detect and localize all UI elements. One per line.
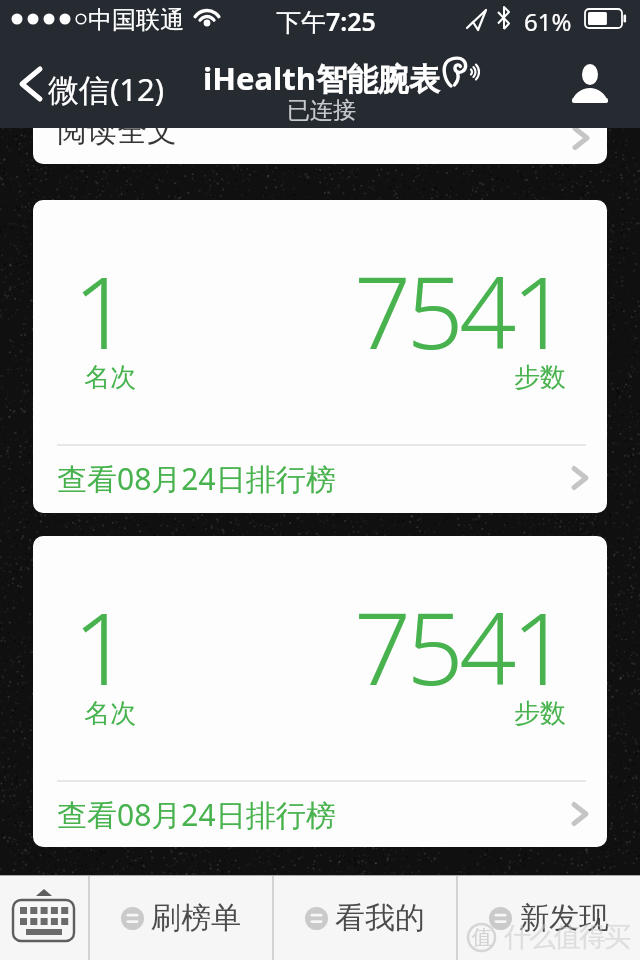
staticText: 1 xyxy=(73,578,131,714)
button[interactable] xyxy=(560,60,620,120)
staticText: 已连接 xyxy=(287,96,356,125)
button[interactable]: 阅读全文 xyxy=(33,128,607,164)
staticText: 61% xyxy=(524,5,572,38)
staticText: 刷榜单 xyxy=(151,899,241,937)
staticText: 名次 xyxy=(84,361,136,394)
staticText: 步数 xyxy=(514,697,566,730)
staticText: 名次 xyxy=(84,697,136,730)
button[interactable]: 查看08月24日排行榜 xyxy=(33,782,607,846)
staticText: 查看08月24日排行榜 xyxy=(57,794,567,835)
staticText: 7541 xyxy=(354,578,565,714)
staticText: 1 xyxy=(73,242,131,378)
button[interactable]: 看我的 xyxy=(274,876,456,960)
staticText: 步数 xyxy=(514,361,566,394)
staticText: 7541 xyxy=(354,242,565,378)
button[interactable]: 新发现 xyxy=(458,876,640,960)
button[interactable]: 微信(12) xyxy=(14,40,165,128)
staticText: 值 xyxy=(472,925,492,950)
staticText: 查看08月24日排行榜 xyxy=(57,458,567,499)
staticText: 什么值得买 xyxy=(505,920,630,954)
button[interactable]: 查看08月24日排行榜 xyxy=(33,446,607,510)
button[interactable] xyxy=(0,876,88,960)
staticText: 下午7:25 xyxy=(276,4,376,38)
staticText: 看我的 xyxy=(335,899,425,937)
staticText: 中国联通 xyxy=(88,5,184,35)
staticText: 阅读全文 xyxy=(57,128,177,148)
button[interactable]: 刷榜单 xyxy=(90,876,272,960)
staticText: iHealth智能腕表 xyxy=(203,57,440,99)
staticText: 微信(12) xyxy=(48,68,165,110)
staticText: 新发现 xyxy=(519,899,609,937)
